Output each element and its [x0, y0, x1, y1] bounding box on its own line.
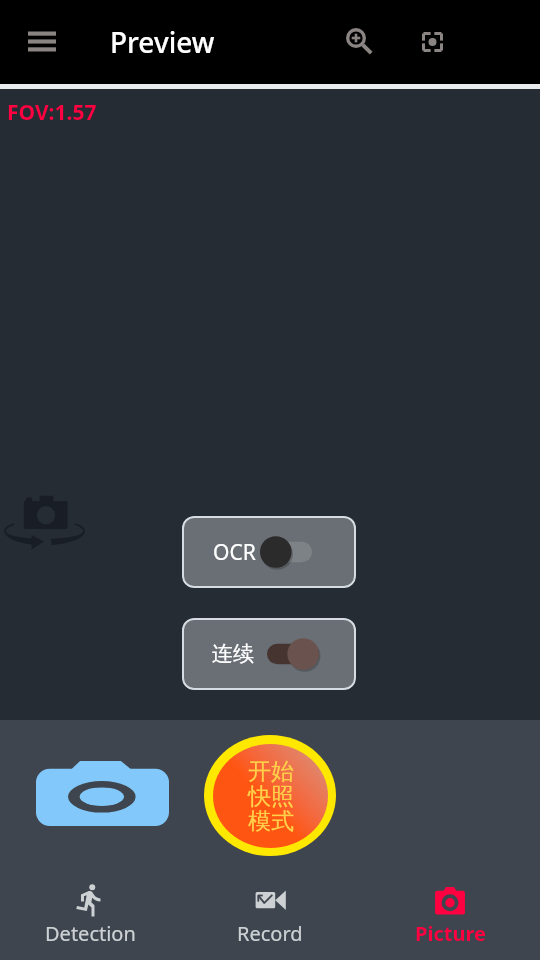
button[interactable]: 开始 快照 模式	[204, 735, 336, 856]
button[interactable]: OCR	[182, 516, 356, 588]
button[interactable]: Record	[180, 860, 360, 960]
staticText: OCR	[213, 538, 256, 567]
button[interactable]: Detection	[0, 860, 180, 960]
button[interactable]: Zoom in	[328, 14, 384, 70]
staticText: FOV:1.57	[7, 98, 97, 127]
staticText: Detection	[45, 920, 136, 947]
button[interactable]: Center focus	[404, 14, 460, 70]
staticText: Record	[237, 920, 303, 947]
staticText: 开始 快照 模式	[248, 757, 294, 835]
staticText: Picture	[415, 920, 486, 947]
staticText: 连续	[212, 641, 254, 667]
staticText: Preview	[110, 23, 215, 61]
button[interactable]: Camera	[36, 761, 169, 826]
button[interactable]: Switch camera	[4, 495, 83, 548]
button[interactable]: Picture	[360, 860, 540, 960]
button[interactable]: Menu	[14, 14, 70, 70]
button[interactable]: 连续	[182, 618, 356, 690]
